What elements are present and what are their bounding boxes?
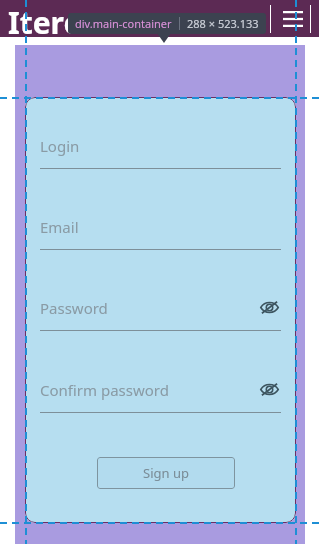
staticText: Itero (8, 2, 83, 39)
button[interactable]: Confirm password (40, 373, 281, 419)
button[interactable]: Show password (257, 295, 281, 319)
button[interactable]: Email (40, 210, 281, 256)
staticText: Login (40, 136, 80, 156)
button[interactable]: Show password (257, 377, 281, 401)
button[interactable]: Login (40, 129, 281, 175)
button[interactable]: Open menu (280, 6, 306, 32)
staticText: 288 × 523.133 (187, 16, 259, 31)
button[interactable]: Sign up (97, 457, 235, 489)
staticText: Sign up (143, 464, 189, 482)
button[interactable]: Password (40, 291, 281, 337)
staticText: Email (40, 217, 79, 237)
staticText: div.main-container (75, 16, 172, 31)
staticText: Password (40, 298, 108, 318)
staticText: Confirm password (40, 380, 169, 400)
